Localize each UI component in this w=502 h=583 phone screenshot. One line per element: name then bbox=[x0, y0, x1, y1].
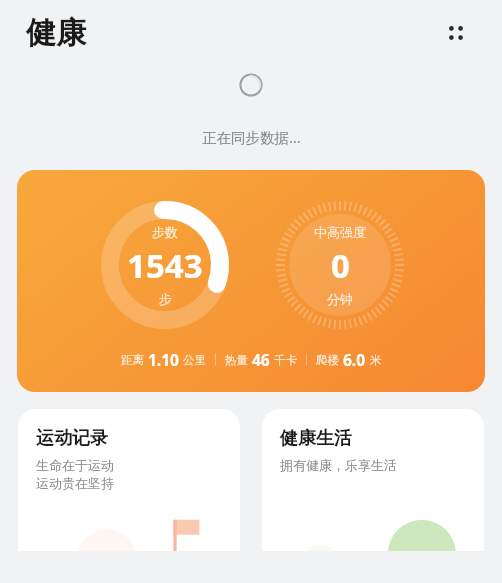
staticText: 公里 bbox=[183, 353, 206, 367]
staticText: 步数 bbox=[152, 224, 178, 240]
staticText: 正在同步数据... bbox=[202, 127, 301, 147]
staticText: 6.0 bbox=[343, 349, 366, 370]
button[interactable]: 运动记录 bbox=[18, 409, 240, 551]
staticText: 1543 bbox=[127, 243, 203, 288]
staticText: 分钟 bbox=[327, 291, 353, 307]
staticText: 千卡 bbox=[274, 353, 297, 367]
staticText: 运动贵在坚持 bbox=[36, 475, 114, 491]
button[interactable]: More options bbox=[436, 13, 476, 53]
staticText: 距离 bbox=[121, 353, 144, 367]
staticText: 1.10 bbox=[148, 349, 179, 370]
staticText: 中高强度 bbox=[314, 224, 366, 240]
button[interactable]: 健康生活 bbox=[262, 409, 484, 551]
staticText: 拥有健康，乐享生活 bbox=[280, 457, 397, 473]
staticText: 46 bbox=[252, 349, 270, 370]
staticText: 米 bbox=[370, 353, 382, 367]
staticText: 生命在于运动 bbox=[36, 457, 114, 473]
staticText: 爬楼 bbox=[316, 353, 339, 367]
staticText: 热量 bbox=[225, 353, 248, 367]
staticText: 运动记录 bbox=[36, 427, 108, 450]
staticText: 步 bbox=[159, 291, 172, 307]
staticText: 0 bbox=[331, 243, 350, 288]
staticText: 健康生活 bbox=[280, 427, 352, 450]
button[interactable]: 步数 bbox=[17, 170, 485, 392]
staticText: 健康 bbox=[26, 14, 86, 52]
